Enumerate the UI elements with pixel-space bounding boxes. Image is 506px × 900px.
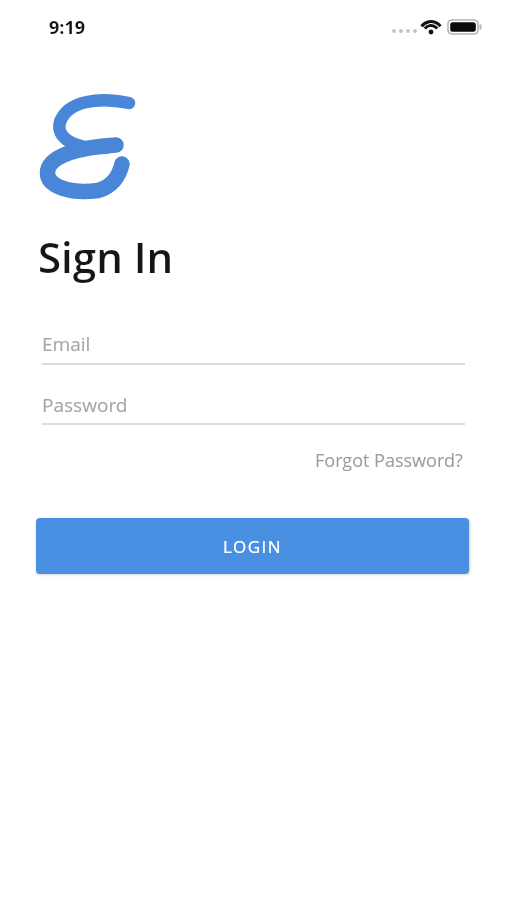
staticText: 9:19 — [49, 15, 85, 40]
staticText: Password — [42, 392, 128, 418]
button[interactable]: Forgot Password? — [315, 448, 463, 473]
staticText: Sign In — [38, 228, 174, 285]
button[interactable]: Password — [42, 388, 465, 426]
staticText: LOGIN — [223, 535, 283, 558]
staticText: Email — [42, 331, 91, 357]
button[interactable]: Email — [42, 327, 465, 365]
button[interactable]: LOGIN — [36, 518, 469, 574]
